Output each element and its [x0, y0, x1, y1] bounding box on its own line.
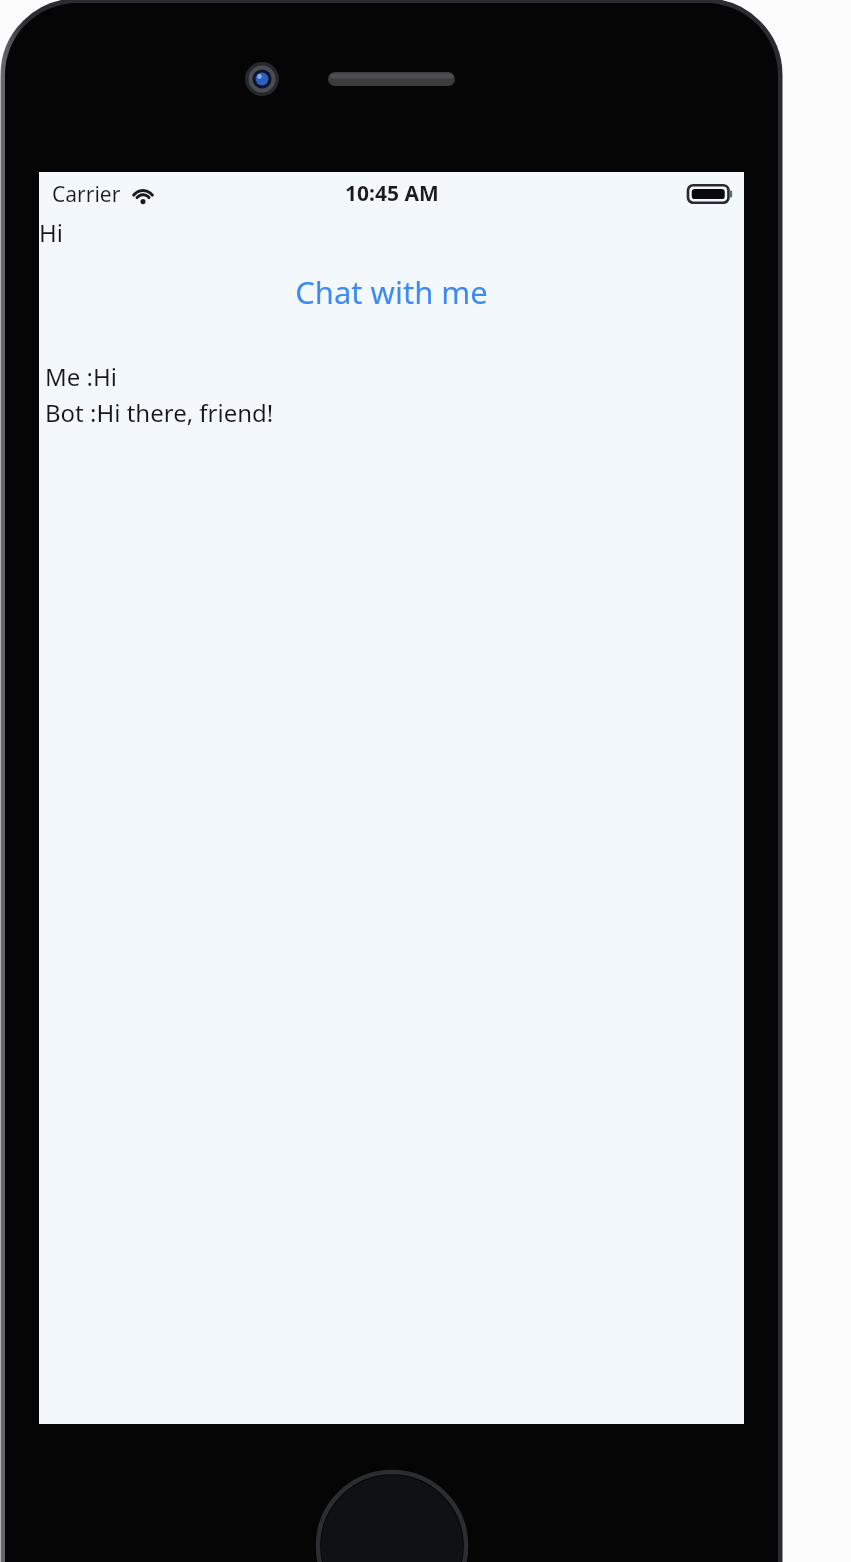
staticText: Me :Hi [45, 360, 117, 393]
staticText: Bot :Hi there, friend! [45, 396, 274, 429]
staticText: Carrier [52, 180, 121, 209]
staticText: 10:45 AM [345, 179, 439, 208]
staticText: Hi [39, 216, 63, 249]
button[interactable]: Chat with me [39, 271, 744, 313]
other: Battery full [688, 183, 734, 205]
other: Wi-Fi signal [130, 185, 156, 205]
